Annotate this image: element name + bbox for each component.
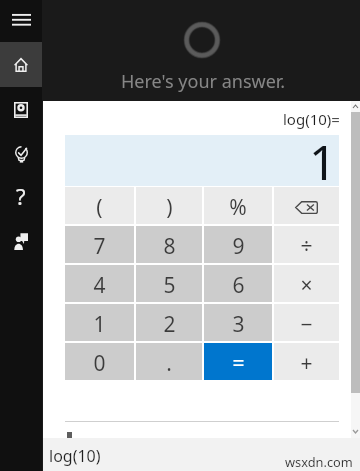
button[interactable]: 0 — [65, 343, 134, 380]
staticText: 4 — [93, 271, 106, 300]
staticText: = — [232, 349, 245, 378]
button[interactable]: 3 — [204, 304, 272, 341]
staticText: 1 — [93, 310, 106, 339]
staticText: 9 — [232, 232, 245, 261]
staticText: ÷ — [300, 232, 313, 261]
staticText: log(10)= — [283, 109, 340, 129]
button[interactable]: 2 — [136, 304, 202, 341]
button[interactable]: Reminders — [0, 132, 42, 177]
button[interactable]: 7 — [65, 226, 134, 263]
staticText: % — [229, 193, 247, 222]
staticText: 1 — [309, 129, 337, 180]
button[interactable]: × — [274, 265, 339, 302]
staticText: ( — [96, 193, 103, 222]
staticText: Here's your answer. — [121, 69, 286, 94]
button[interactable]: 4 — [65, 265, 134, 302]
button[interactable]: Notebook — [0, 87, 42, 132]
button[interactable]: 9 — [204, 226, 272, 263]
button[interactable] — [274, 187, 339, 224]
staticText: 8 — [163, 232, 176, 261]
staticText: 0 — [93, 349, 106, 378]
staticText: . — [166, 349, 172, 378]
button[interactable]: ) — [136, 187, 202, 224]
button[interactable]: Home — [0, 42, 42, 87]
staticText: ? — [16, 181, 26, 211]
staticText: 7 — [93, 232, 106, 261]
button[interactable]: . — [136, 343, 202, 380]
staticText: 6 — [232, 271, 245, 300]
button[interactable]: = — [204, 343, 272, 380]
staticText: + — [300, 349, 313, 378]
staticText: − — [300, 310, 313, 339]
button[interactable]: Scroll — [351, 101, 360, 438]
button[interactable]: 1 — [65, 304, 134, 341]
staticText: 3 — [232, 310, 245, 339]
staticText: wsxdn.com — [285, 453, 353, 470]
button[interactable]: 6 — [204, 265, 272, 302]
button[interactable]: ( — [65, 187, 134, 224]
button[interactable]: + — [274, 343, 339, 380]
button[interactable]: Help — [0, 177, 42, 222]
button[interactable]: − — [274, 304, 339, 341]
staticText: 2 — [163, 310, 176, 339]
staticText: 5 — [163, 271, 176, 300]
button[interactable]: % — [204, 187, 272, 224]
staticText: log(10) — [49, 445, 101, 467]
button[interactable]: Menu — [0, 0, 42, 42]
button[interactable]: ÷ — [274, 226, 339, 263]
staticText: × — [300, 271, 313, 300]
button[interactable]: 5 — [136, 265, 202, 302]
button[interactable]: Feedback — [0, 222, 42, 267]
staticText: ) — [166, 193, 173, 222]
button[interactable]: 8 — [136, 226, 202, 263]
